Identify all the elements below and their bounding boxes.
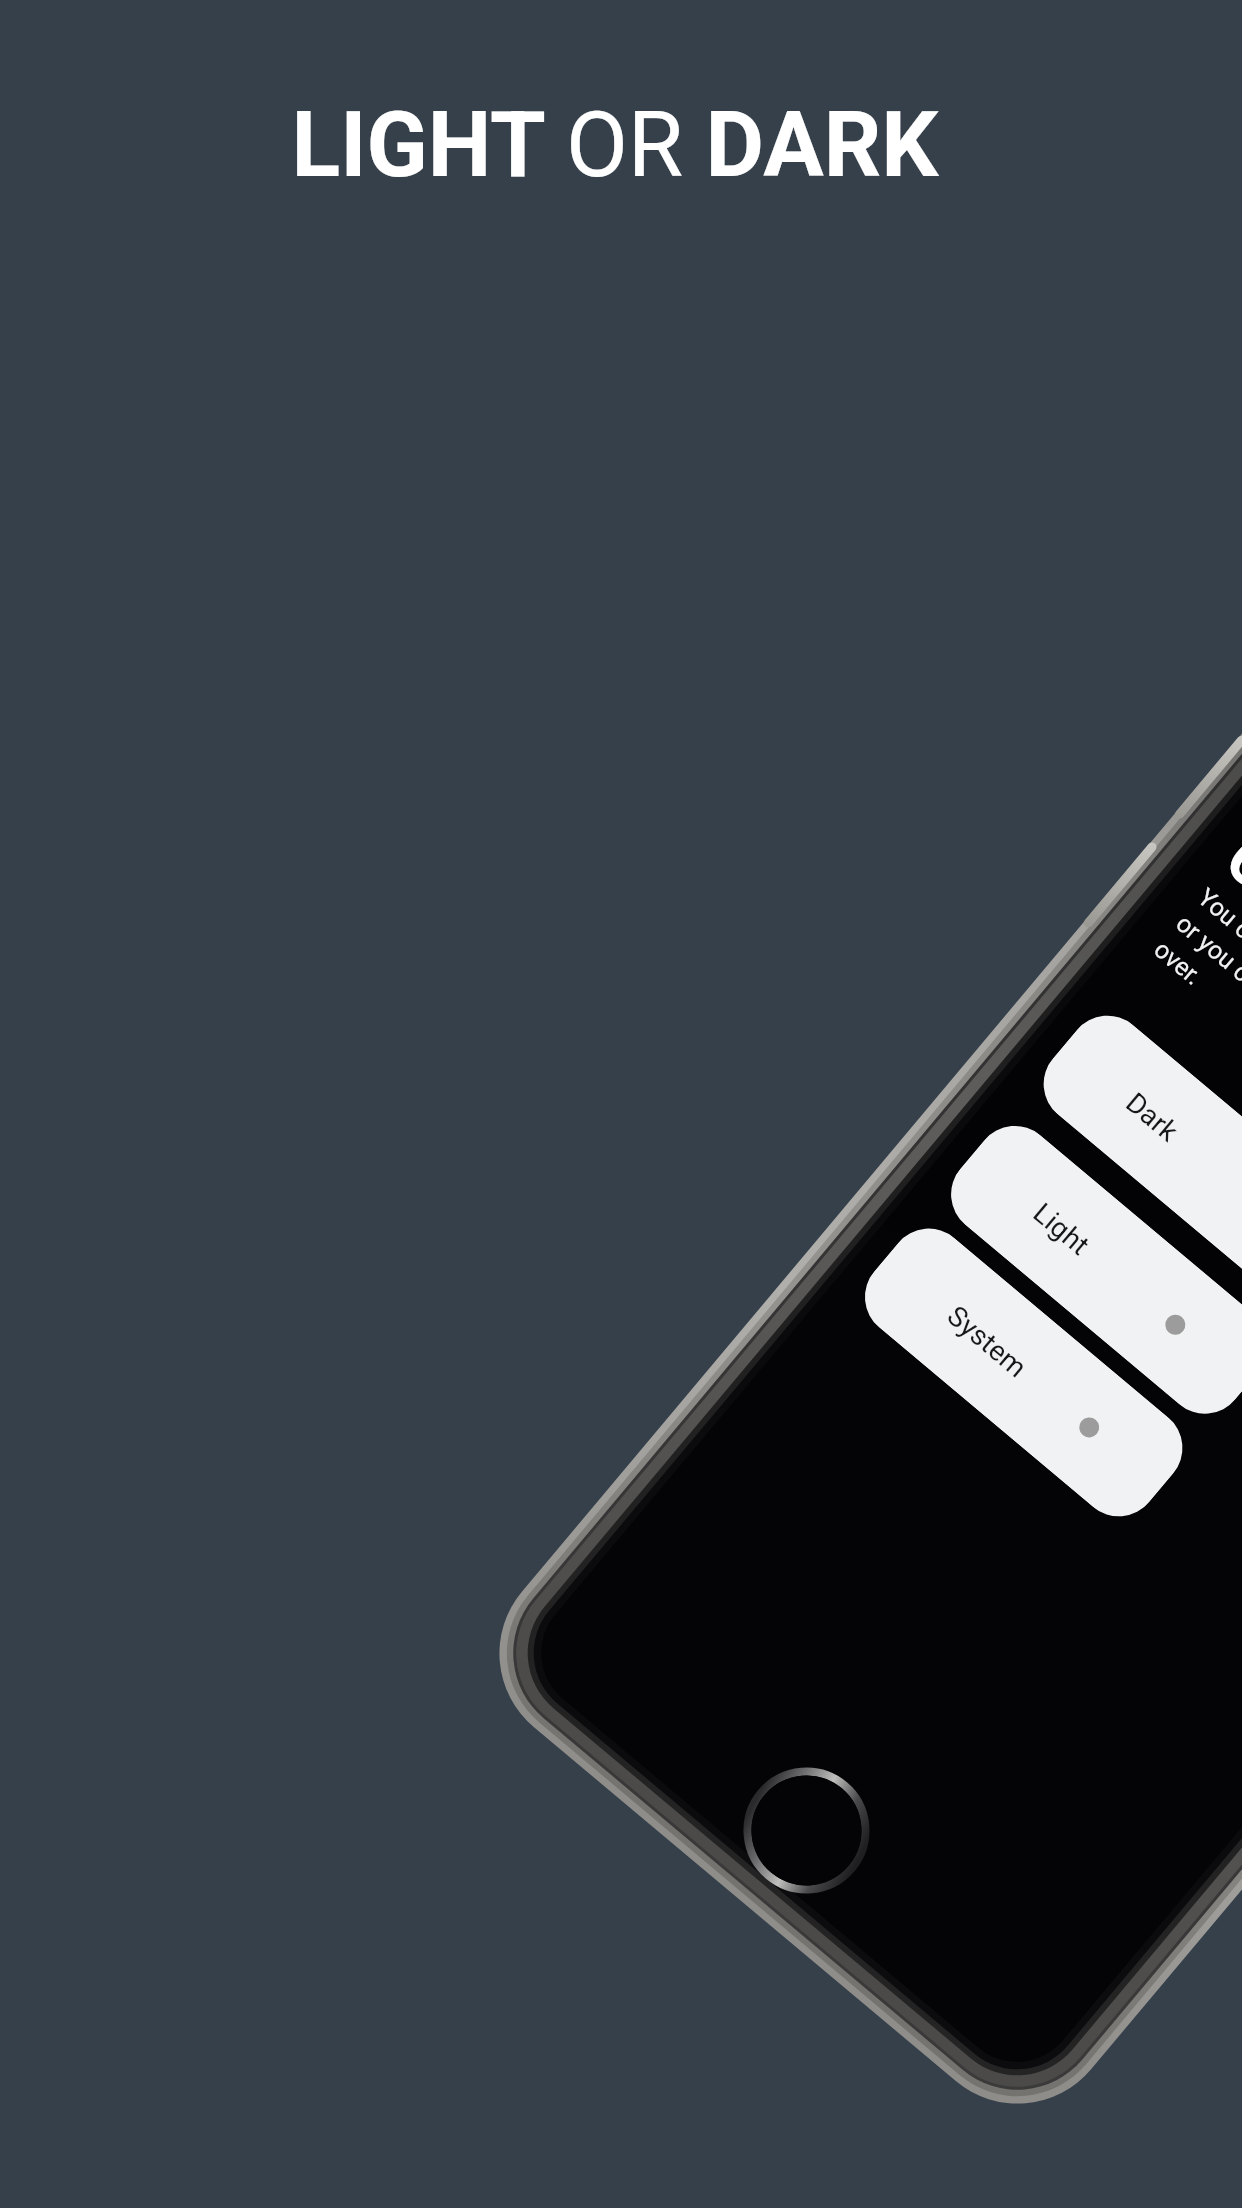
staticText: Dark xyxy=(1119,1086,1185,1149)
staticText: Light xyxy=(1027,1196,1096,1262)
other: Phone showing the theme picker xyxy=(460,493,1242,2143)
staticText: LIGHT OR DARK xyxy=(291,93,939,198)
staticText: Choose a theme xyxy=(1211,822,1242,1179)
button[interactable]: Light xyxy=(935,1110,1242,1430)
staticText: You can let the app follow the system, o… xyxy=(1148,883,1242,1247)
button[interactable]: System xyxy=(849,1212,1199,1533)
button[interactable]: Dark xyxy=(1027,999,1242,1320)
staticText: System xyxy=(941,1299,1033,1384)
